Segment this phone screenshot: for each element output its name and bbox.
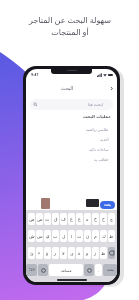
- staticText: م: [94, 234, 97, 239]
- button[interactable]: ه: [84, 213, 91, 225]
- staticText: عمليات البحث: [32, 114, 111, 120]
- staticText: ف: [61, 217, 66, 222]
- staticText: ة: [78, 251, 81, 256]
- staticText: بحث: [107, 268, 114, 272]
- staticText: لا: [62, 251, 65, 256]
- button[interactable]: ص: [36, 213, 43, 225]
- button[interactable]: ق: [52, 213, 59, 225]
- staticText: ئ: [30, 251, 34, 256]
- staticText: و: [86, 251, 89, 256]
- staticText: ب: [53, 234, 58, 239]
- button[interactable]: .: [95, 264, 102, 276]
- staticText: سهولة البحث عن المتاجر: [29, 14, 111, 25]
- button[interactable]: بحث: [103, 264, 117, 276]
- button[interactable]: [38, 264, 48, 276]
- button[interactable]: ملابس رياضية: [26, 124, 117, 134]
- button[interactable]: ئ: [28, 247, 35, 259]
- button[interactable]: ف: [60, 213, 67, 225]
- staticText: غ: [70, 217, 73, 222]
- button[interactable]: ء: [36, 247, 43, 259]
- staticText: أو المنتجات: [51, 26, 89, 37]
- button[interactable]: أحذية: [26, 134, 117, 144]
- staticText: ش: [29, 234, 35, 239]
- button[interactable]: ظ: [100, 247, 107, 259]
- staticText: س: [37, 234, 43, 239]
- staticText: ل: [62, 234, 66, 239]
- staticText: ز: [94, 251, 97, 256]
- staticText: ملابس رياضية: [86, 127, 109, 132]
- button[interactable]: ل: [60, 230, 67, 242]
- staticText: مسافة: [61, 268, 72, 272]
- staticText: ى: [70, 251, 74, 256]
- button[interactable]: ح: [100, 213, 107, 225]
- button[interactable]: ض: [28, 213, 35, 225]
- button[interactable]: ع: [76, 213, 83, 225]
- staticText: .: [98, 268, 100, 273]
- staticText: ي: [46, 234, 50, 239]
- button[interactable]: ز: [92, 247, 99, 259]
- staticText: حقائب يد: [94, 157, 109, 162]
- staticText: ص: [37, 217, 43, 222]
- staticText: خ: [94, 217, 97, 222]
- button[interactable]: ؤ: [44, 247, 51, 259]
- button[interactable]: س: [36, 230, 43, 242]
- staticText: ساعات ذكية: [89, 147, 109, 152]
- button[interactable]: [84, 264, 94, 276]
- staticText: 9:41: [31, 72, 39, 77]
- staticText: ؤ: [46, 251, 49, 256]
- staticText: ابحث هنا: [88, 102, 103, 108]
- button[interactable]: ج: [108, 213, 115, 225]
- button[interactable]: ط: [108, 230, 115, 242]
- button[interactable]: ا: [68, 230, 75, 242]
- button[interactable]: خ: [92, 213, 99, 225]
- staticText: ر: [54, 251, 57, 256]
- staticText: 123: [29, 268, 35, 272]
- staticText: ض: [29, 217, 35, 222]
- button[interactable]: غ: [68, 213, 75, 225]
- staticText: ا: [71, 234, 73, 239]
- staticText: ث: [45, 217, 50, 222]
- button[interactable]: ساعات ذكية: [26, 144, 117, 154]
- staticText: ه: [86, 217, 89, 222]
- button[interactable]: و: [84, 247, 91, 259]
- staticText: ط: [109, 234, 114, 239]
- button[interactable]: ش: [28, 230, 35, 242]
- staticText: ح: [102, 217, 105, 222]
- button[interactable]: 123: [26, 264, 37, 276]
- button[interactable]: م: [92, 230, 99, 242]
- button[interactable]: ن: [84, 230, 91, 242]
- button[interactable]: ر: [52, 247, 59, 259]
- button[interactable]: [108, 247, 115, 259]
- button[interactable]: ب: [52, 230, 59, 242]
- staticText: ج: [110, 217, 113, 222]
- staticText: ظ: [101, 251, 106, 256]
- button[interactable]: ى: [68, 247, 75, 259]
- staticText: بحث: [104, 203, 111, 207]
- staticText: ن: [86, 234, 90, 239]
- staticText: ع: [78, 217, 81, 222]
- button[interactable]: ابحث هنا: [30, 99, 113, 110]
- button[interactable]: حقائب يد: [26, 154, 117, 164]
- staticText: أحذية: [100, 137, 109, 142]
- staticText: البحث: [30, 85, 104, 91]
- button[interactable]: لا: [60, 247, 67, 259]
- button[interactable]: مسافة: [49, 264, 83, 276]
- staticText: ت: [77, 234, 82, 239]
- staticText: ق: [54, 217, 58, 222]
- button[interactable]: ث: [44, 213, 51, 225]
- button[interactable]: ت: [76, 230, 83, 242]
- button[interactable]: بحث: [100, 201, 115, 209]
- staticText: ء: [38, 251, 41, 256]
- button[interactable]: ة: [76, 247, 83, 259]
- staticText: ك: [102, 234, 106, 239]
- button[interactable]: [107, 84, 115, 92]
- button[interactable]: ي: [44, 230, 51, 242]
- button[interactable]: ك: [100, 230, 107, 242]
